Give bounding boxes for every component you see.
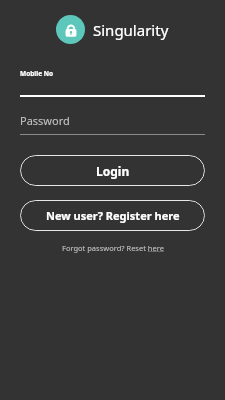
button[interactable]: Forgot password? Reset here [56, 241, 170, 255]
staticText: Password [20, 113, 70, 128]
staticText: Login [96, 163, 130, 179]
staticText: Singularity [93, 20, 169, 40]
staticText: Forgot password? Reset here [62, 243, 164, 253]
staticText: New user? Register here [46, 208, 180, 223]
button[interactable]: Login [20, 155, 205, 186]
staticText: Mobile No [20, 69, 54, 78]
button[interactable]: New user? Register here [20, 200, 205, 231]
other: App logo, secure lock [56, 15, 85, 44]
